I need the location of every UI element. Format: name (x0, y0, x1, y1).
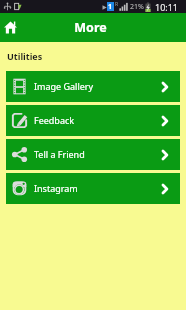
staticText: 10:11 (155, 1, 179, 13)
staticText: R (115, 1, 119, 8)
staticText: 1 (108, 2, 113, 11)
staticText: Tell a Friend (34, 148, 85, 160)
staticText: Feedback (34, 114, 75, 126)
staticText: Image Gallery (34, 80, 94, 92)
staticText: 21% (130, 2, 144, 12)
staticText: More (74, 19, 107, 36)
button[interactable]: Image Gallery (6, 71, 180, 102)
staticText: Utilities (7, 50, 43, 62)
button[interactable]: Tell a Friend (6, 139, 180, 170)
staticText: Instagram (34, 182, 78, 194)
button[interactable]: Home (0, 13, 23, 42)
button[interactable]: Instagram (6, 173, 180, 204)
button[interactable]: Feedback (6, 105, 180, 136)
